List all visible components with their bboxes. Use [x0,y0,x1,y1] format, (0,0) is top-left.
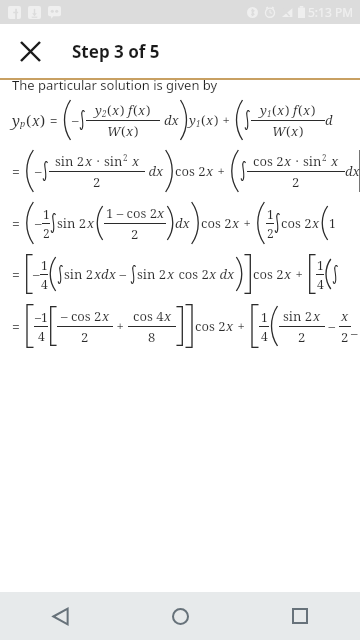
staticText: ) [40,110,46,130]
staticText: f [128,101,133,119]
staticText: + [234,317,249,335]
staticText: x [157,204,165,222]
staticText: x [32,111,40,130]
staticText: dx [345,162,360,180]
staticText: 4 [41,276,48,292]
staticText: sin 2 [64,265,94,283]
staticText: sin [303,152,322,170]
staticText: ) [214,111,219,129]
staticText: cos 2 [201,214,232,232]
staticText: 4 [261,328,268,344]
staticText: ) [120,101,128,119]
staticText: x [85,152,93,170]
staticText: 1 [196,118,201,129]
staticText: y [12,110,20,130]
staticText: x [277,101,285,119]
staticText: dx [175,214,190,232]
staticText: + [214,162,229,180]
staticText: cos 2 [253,152,284,170]
staticText: – [33,265,40,283]
staticText: x [102,307,110,325]
button[interactable]: Recent apps [240,592,360,640]
staticText: x [284,265,292,283]
staticText: · [93,152,104,170]
staticText: ) [311,101,316,119]
staticText: x [226,317,234,335]
staticText: –1 [35,309,48,325]
staticText: ( [286,122,291,140]
staticText: x [112,101,120,119]
staticText: dx [164,111,179,129]
staticText: 2 [123,152,128,163]
staticText: 2 [322,152,327,163]
staticText: f [293,101,298,119]
staticText: 1 [317,257,324,273]
staticText: 8 [148,328,156,346]
staticText: – cos 2 [61,307,102,325]
staticText: 4 [317,276,324,292]
button[interactable]: Home [120,592,240,640]
staticText: ) [299,122,304,140]
staticText: x [291,122,299,140]
staticText: x [126,122,134,140]
staticText: 1 [329,215,336,231]
staticText: 2 [298,328,306,346]
staticText: x [206,162,214,180]
staticText: cos 2 [175,162,206,180]
staticText: = [12,214,24,233]
staticText: W [107,122,121,140]
staticText: ( [298,101,303,119]
staticText: x [206,111,214,129]
staticText: ( [26,110,32,130]
staticText: W [272,122,286,140]
staticText: x [313,307,321,325]
staticText: 2 [93,173,101,191]
staticText: – [116,265,130,283]
staticText: + [292,265,307,283]
staticText: – [325,317,339,335]
staticText: ( [201,111,206,129]
staticText: The particular solution is given by [12,80,218,94]
staticText: 2 [81,328,89,346]
staticText: = [12,265,24,284]
staticText: 1 [267,108,272,119]
staticText: x [312,214,320,232]
staticText: 5:13 PM [308,4,354,20]
staticText: sin 2 [55,152,85,170]
staticText: + [113,317,128,335]
staticText: sin [104,152,123,170]
staticText: p [20,117,26,129]
staticText: x [232,214,240,232]
staticText: = [12,317,24,336]
staticText: 1 – cos 2 [106,204,157,222]
staticText: 2 [43,225,50,241]
staticText: y [95,101,102,119]
staticText: y [189,111,196,129]
staticText: 2 [102,108,107,119]
staticText: x [132,152,140,170]
staticText: – [351,310,360,342]
staticText: x [341,307,349,325]
button[interactable]: Close [8,29,52,73]
staticText: 1 [43,206,50,222]
staticText: ) [285,101,293,119]
staticText: 1 [41,257,48,273]
staticText: ) [146,101,151,119]
staticText: Step 3 of 5 [72,40,160,63]
staticText: dx [145,162,164,180]
staticText: cos 2 [281,214,312,232]
staticText: 2 [267,225,274,241]
staticText: x [164,307,172,325]
staticText: ( [107,101,112,119]
staticText: 2 [131,225,139,243]
staticText: x [303,101,311,119]
staticText: – [35,214,42,232]
staticText: – [35,162,42,180]
staticText: ) [134,122,139,140]
staticText: · [292,152,303,170]
button[interactable]: Back [0,592,120,640]
staticText: – [72,111,79,129]
staticText: xdx [94,265,116,283]
